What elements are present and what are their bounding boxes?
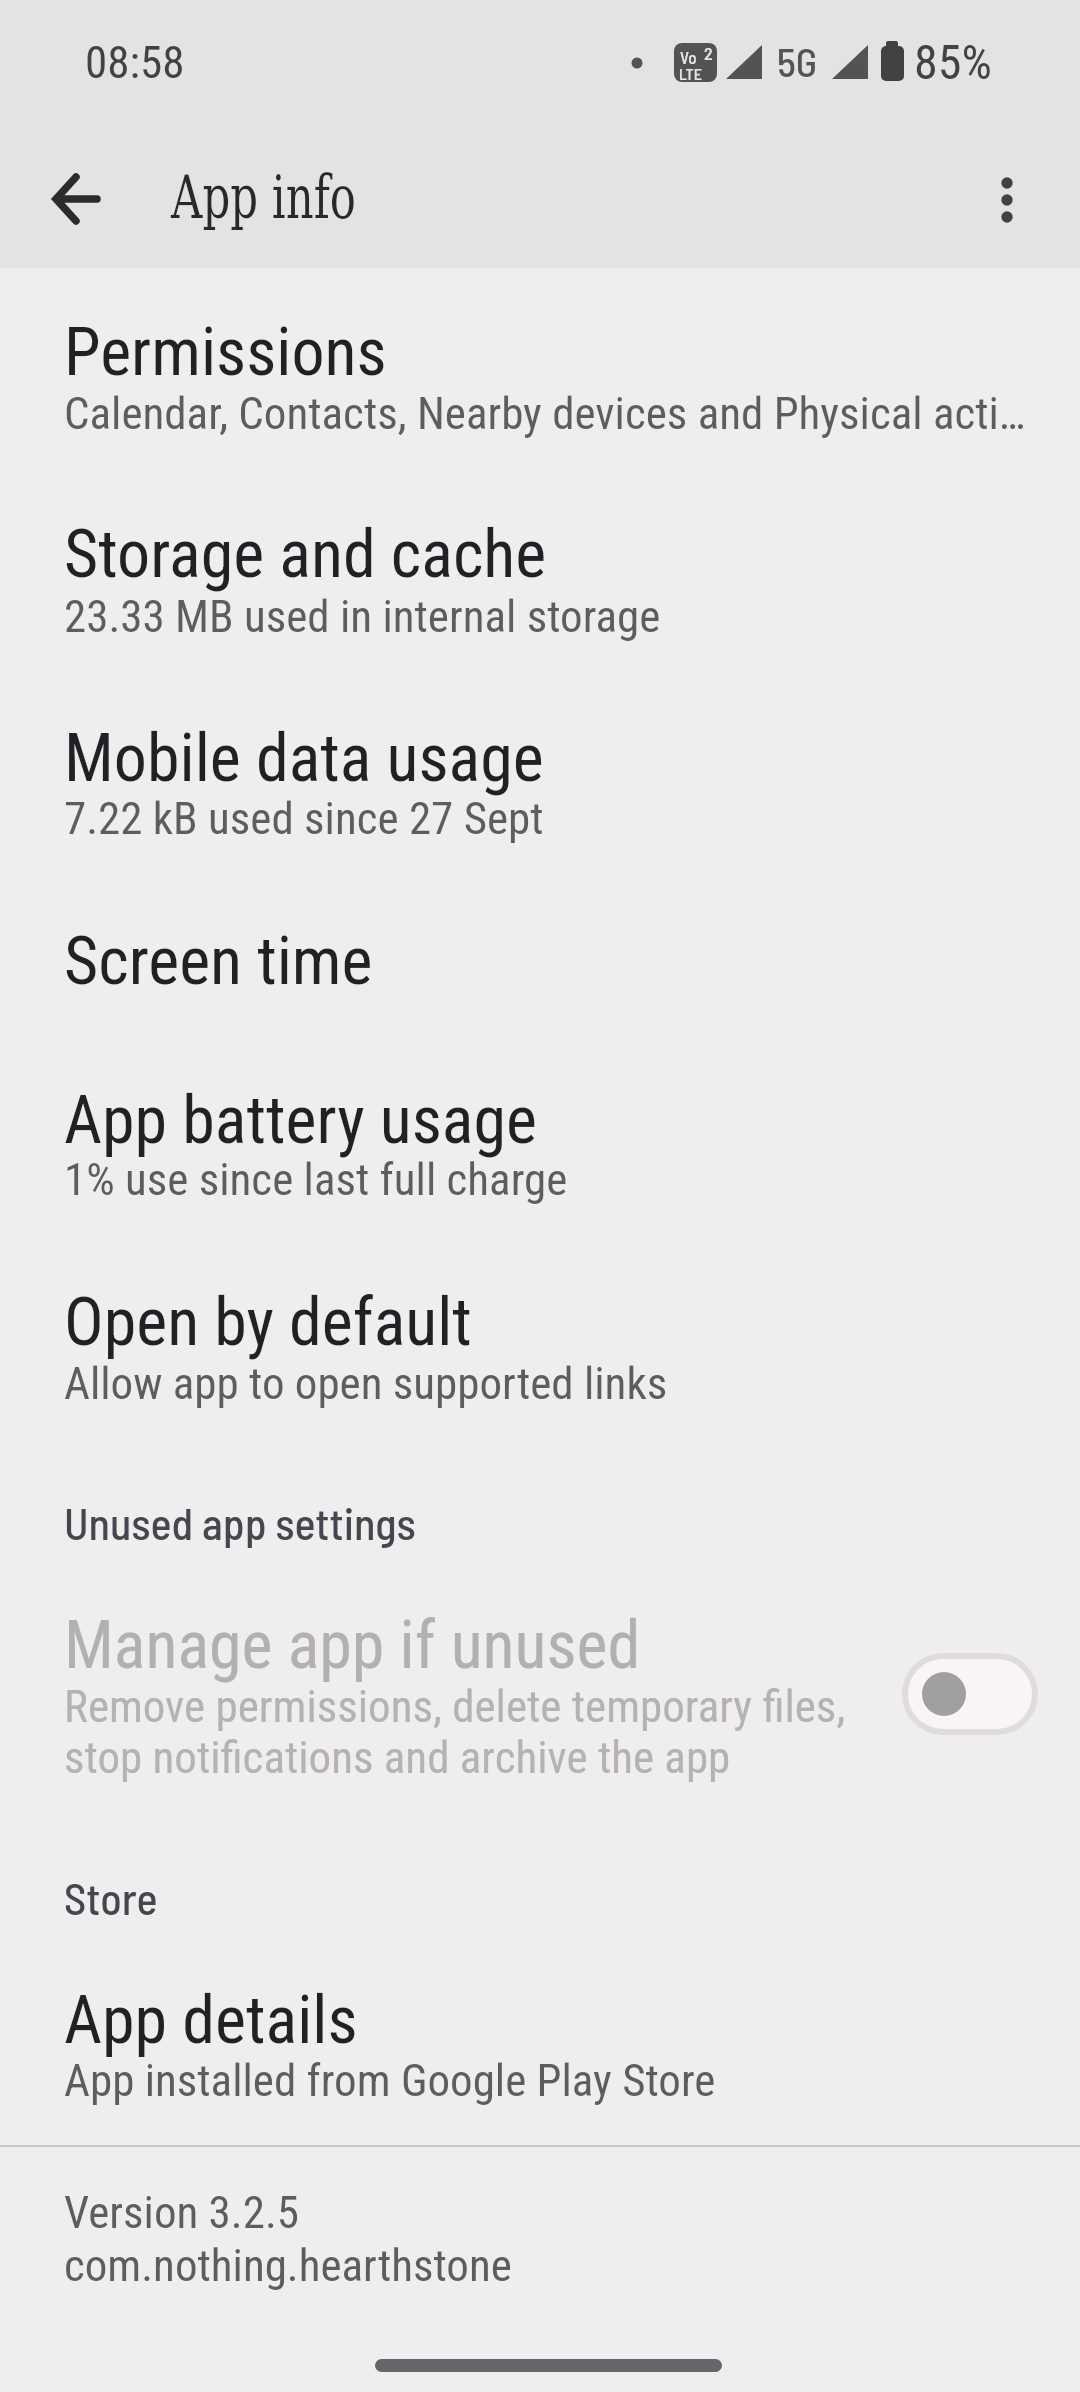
staticText: LTE	[679, 64, 702, 83]
staticText: Mobile data usage	[64, 720, 544, 797]
staticText: Storage and cache	[64, 516, 547, 593]
staticText: App details	[64, 1982, 358, 2059]
staticText: Allow app to open supported links	[64, 1357, 668, 1410]
staticText: 1% use since last full charge	[64, 1153, 568, 1206]
staticText: Version 3.2.5	[64, 2186, 299, 2239]
staticText: 2	[704, 42, 713, 64]
staticText: Open by default	[64, 1284, 472, 1361]
staticText: Store	[64, 1871, 158, 1924]
staticText: Vo	[680, 47, 697, 67]
staticText: 85%	[914, 34, 992, 90]
staticText: Permissions	[64, 314, 387, 391]
staticText: Screen time	[64, 923, 373, 1000]
staticText: Unused app settings	[64, 1496, 416, 1549]
staticText: 7.22 kB used since 27 Sept	[64, 792, 544, 845]
staticText: App battery usage	[64, 1082, 537, 1159]
staticText: App info	[171, 162, 356, 232]
staticText: com.nothing.hearthstone	[64, 2239, 512, 2292]
staticText: Manage app if unused	[64, 1607, 641, 1684]
staticText: 08:58	[85, 36, 185, 89]
staticText: 5G	[777, 37, 818, 85]
staticText: App installed from Google Play Store	[64, 2054, 716, 2107]
staticText: Remove permissions, delete temporary fil…	[64, 1680, 846, 1733]
staticText: Calendar, Contacts, Nearby devices and P…	[64, 387, 1026, 440]
staticText: 23.33 MB used in internal storage	[64, 590, 661, 643]
staticText: stop notifications and archive the app	[64, 1731, 731, 1784]
